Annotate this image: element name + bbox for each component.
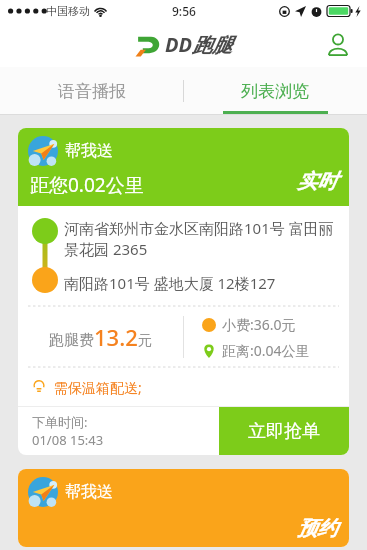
- staticText: 距离:0.04公里: [222, 341, 310, 360]
- staticText: 小费:36.0元: [222, 315, 296, 334]
- staticText: 预约: [297, 516, 337, 541]
- button[interactable]: Profile: [323, 30, 353, 60]
- staticText: 13.2: [94, 322, 138, 352]
- staticText: 01/08 15:43: [32, 431, 104, 449]
- staticText: 距您0.02公里: [30, 172, 144, 198]
- button[interactable]: 语音播报: [0, 67, 183, 115]
- staticText: 下单时间:: [32, 413, 88, 431]
- button[interactable]: 立即抢单: [219, 407, 349, 455]
- button[interactable]: 列表浏览: [183, 67, 367, 115]
- button[interactable]: 帮我送: [18, 128, 349, 455]
- staticText: 帮我送: [65, 141, 113, 161]
- button[interactable]: 帮我送: [18, 469, 349, 547]
- staticText: 列表浏览: [241, 81, 309, 102]
- staticText: 中国移动: [46, 4, 90, 18]
- staticText: 需保温箱配送;: [54, 378, 142, 397]
- staticText: 元: [138, 332, 152, 350]
- staticText: 9:56: [172, 3, 196, 19]
- staticText: 跑腿费: [49, 331, 94, 350]
- staticText: 南阳路101号 盛地大厦 12楼127: [64, 273, 276, 293]
- staticText: 河南省郑州市金水区南阳路101号 富田丽景花园 2365: [64, 218, 339, 259]
- staticText: 实时: [297, 169, 337, 194]
- staticText: 语音播报: [58, 81, 126, 102]
- staticText: 帮我送: [65, 482, 113, 502]
- staticText: DD跑腿: [165, 31, 233, 58]
- staticText: 立即抢单: [248, 420, 320, 443]
